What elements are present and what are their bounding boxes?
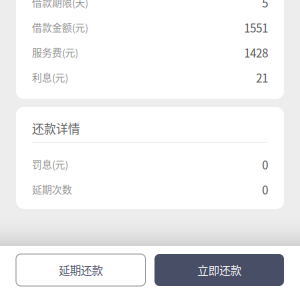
staticText: 21 — [256, 69, 268, 86]
button[interactable]: 立即还款 — [154, 254, 284, 286]
staticText: 利息(元) — [32, 70, 68, 85]
staticText: 服务费(元) — [32, 45, 78, 60]
staticText: 延期还款 — [59, 262, 103, 278]
staticText: 借款金额(元) — [32, 20, 88, 35]
button[interactable]: 延期还款 — [16, 254, 145, 286]
staticText: 还款详情 — [32, 120, 80, 137]
staticText: 1551 — [244, 19, 268, 36]
staticText: 1428 — [244, 44, 268, 61]
staticText: 5 — [262, 0, 268, 11]
staticText: 0 — [262, 156, 268, 173]
staticText: 立即还款 — [197, 262, 241, 278]
staticText: 0 — [262, 181, 268, 198]
staticText: 借款期限(天) — [32, 0, 88, 10]
staticText: 罚息(元) — [32, 157, 68, 172]
staticText: 延期次数 — [32, 182, 72, 197]
